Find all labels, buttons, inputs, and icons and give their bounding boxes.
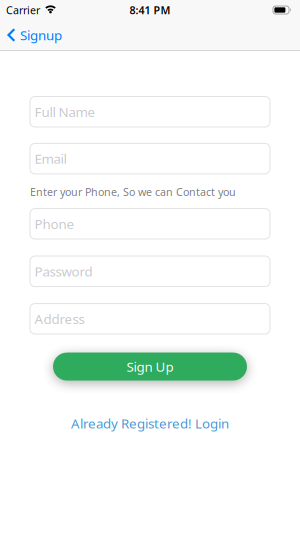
staticText: 8:41 PM bbox=[129, 3, 170, 17]
staticText: Sign Up bbox=[126, 358, 173, 375]
staticText: Password bbox=[34, 262, 92, 280]
staticText: Phone bbox=[34, 215, 74, 233]
staticText: Carrier bbox=[6, 3, 40, 17]
staticText: Already Registered! Login bbox=[71, 415, 229, 432]
button[interactable]: Sign Up bbox=[53, 353, 247, 381]
staticText: Signup bbox=[20, 26, 62, 44]
staticText: Address bbox=[34, 310, 84, 328]
staticText: Email bbox=[34, 150, 66, 167]
staticText: Full Name bbox=[34, 103, 95, 121]
staticText: Enter your Phone, So we can Contact you bbox=[30, 185, 236, 199]
button[interactable]: Already Registered! Login bbox=[71, 415, 229, 432]
button[interactable]: Back bbox=[0, 20, 62, 50]
